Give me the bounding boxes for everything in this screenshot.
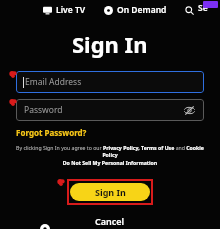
button[interactable]: Search	[182, 0, 214, 20]
button[interactable]: Sign In	[70, 183, 150, 201]
button[interactable]: Password	[16, 99, 204, 121]
button[interactable]: Cancel	[85, 213, 135, 229]
staticText: Sign In	[95, 186, 126, 198]
button[interactable]: Live TV	[40, 2, 89, 18]
staticText: Email Address	[25, 76, 82, 88]
button[interactable]: Forgot Password?	[16, 126, 87, 139]
staticText: Sign In	[72, 29, 148, 59]
staticText: Forgot Password?	[16, 127, 87, 138]
staticText: Live TV	[56, 4, 86, 16]
staticText: Cancel	[95, 215, 125, 227]
staticText: Password	[24, 104, 63, 116]
button[interactable]: Email Address	[16, 71, 204, 93]
button[interactable]: Show password	[183, 104, 196, 117]
staticText: By clicking Sign In you agree to our Pri…	[14, 144, 206, 167]
staticText: On Demand	[117, 4, 167, 16]
button[interactable]: On Demand	[101, 2, 170, 18]
staticText: Search	[198, 2, 211, 18]
